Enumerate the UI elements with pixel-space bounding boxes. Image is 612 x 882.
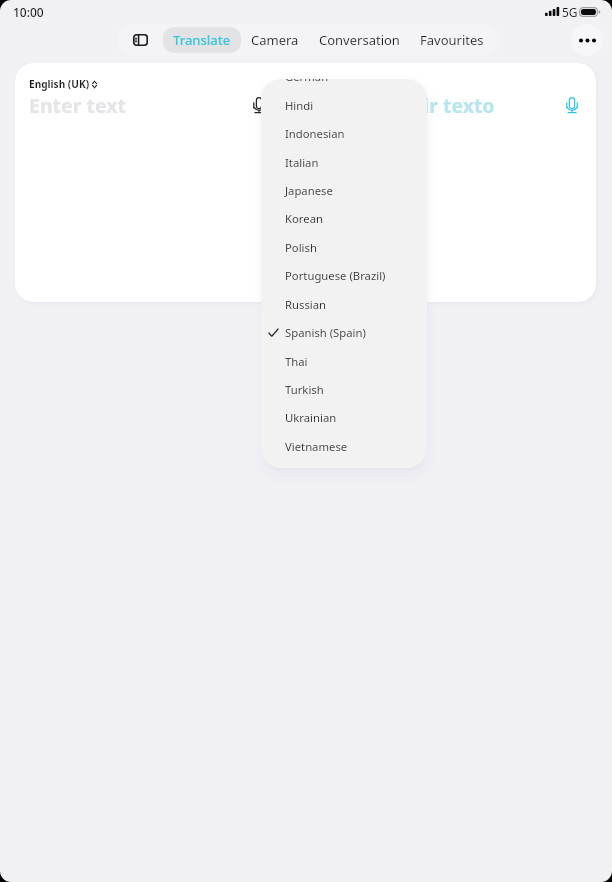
button[interactable]: Polish	[261, 233, 427, 261]
button[interactable]: Spanish (Spain)	[319, 77, 403, 91]
button[interactable]: Japanese	[261, 176, 427, 204]
button[interactable]: Russian	[261, 290, 427, 318]
button[interactable]: Portuguese (Brazil)	[261, 261, 427, 289]
staticText: Camera	[251, 31, 299, 49]
button[interactable]: Ukrainian	[261, 403, 427, 431]
staticText: Favourites	[420, 31, 484, 49]
staticText: Russian	[285, 297, 327, 312]
button[interactable]: More options	[571, 24, 603, 56]
staticText: German	[285, 79, 329, 84]
button[interactable]: Thai	[261, 347, 427, 375]
staticText: Conversation	[319, 31, 400, 49]
staticText: English (UK)	[29, 77, 90, 91]
staticText: Hindi	[285, 98, 314, 113]
button[interactable]: Indonesian	[261, 119, 427, 147]
button[interactable]: Sidebar	[117, 24, 163, 56]
staticText: Polish	[285, 240, 317, 255]
staticText: Turkish	[285, 382, 324, 397]
staticText: Introducir texto	[339, 92, 495, 119]
staticText: 10:00	[13, 4, 44, 20]
staticText: Translate	[173, 31, 231, 49]
button[interactable]: Italian	[261, 148, 427, 176]
staticText: Portuguese (Brazil)	[285, 268, 386, 283]
staticText: Indonesian	[285, 126, 345, 141]
button[interactable]: English (UK)	[29, 77, 97, 91]
button[interactable]: Translate	[163, 27, 241, 53]
button[interactable]: Turkish	[261, 375, 427, 403]
staticText: Spanish (Spain)	[285, 325, 366, 340]
staticText: Vietnamese	[285, 439, 348, 454]
button[interactable]: Camera	[241, 27, 309, 53]
button[interactable]: Hindi	[261, 91, 427, 119]
button[interactable]: Speak	[244, 90, 274, 120]
button[interactable]: Vietnamese	[261, 432, 427, 460]
staticText: Japanese	[285, 183, 333, 198]
staticText: Enter text	[29, 92, 126, 119]
button[interactable]: Korean	[261, 204, 427, 232]
staticText: Italian	[285, 155, 319, 170]
staticText: Ukrainian	[285, 410, 337, 425]
staticText: Korean	[285, 211, 323, 226]
staticText: Spanish (Spain)	[319, 77, 396, 91]
button[interactable]: Speak	[557, 90, 587, 120]
button[interactable]: Conversation	[309, 27, 410, 53]
button[interactable]: Spanish (Spain)	[261, 318, 427, 346]
button[interactable]: Favourites	[410, 27, 494, 53]
button[interactable]: German	[261, 79, 427, 90]
staticText: Thai	[285, 354, 308, 369]
staticText: 5G	[562, 4, 578, 20]
